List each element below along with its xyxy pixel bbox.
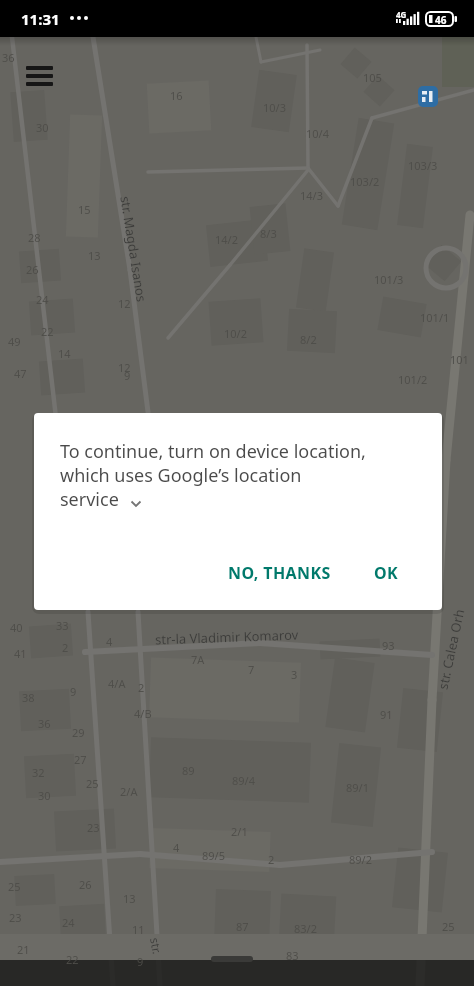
staticText: 25 <box>8 879 21 894</box>
staticText: 13 <box>123 891 136 906</box>
staticText: 41 <box>14 646 27 661</box>
staticText: 87 <box>236 919 249 934</box>
staticText: 7A <box>191 652 205 667</box>
staticText: 8/3 <box>260 226 277 241</box>
staticText: 4G <box>396 9 407 20</box>
staticText: 26 <box>79 877 92 892</box>
staticText: 36 <box>2 50 15 65</box>
staticText: 25 <box>86 776 99 791</box>
staticText: 38 <box>22 690 35 705</box>
staticText: 101/3 <box>374 272 404 287</box>
button[interactable] <box>20 60 59 92</box>
staticText: 16 <box>170 88 183 103</box>
staticText: str. <box>147 936 166 956</box>
staticText: 89/2 <box>349 852 372 867</box>
staticText: 47 <box>14 366 27 381</box>
staticText: 83 <box>286 948 299 963</box>
staticText: 101/2 <box>398 372 428 387</box>
staticText: 12 <box>118 360 131 375</box>
staticText: 30 <box>36 120 49 135</box>
staticText: 24 <box>36 292 49 307</box>
staticText: 103/3 <box>408 158 438 173</box>
staticText: 11 <box>132 922 145 937</box>
staticText: 30 <box>38 788 51 803</box>
staticText: 46 <box>435 13 447 27</box>
staticText: str-la Vladimir Komarov <box>155 625 299 648</box>
staticText: 101/1 <box>420 310 450 325</box>
staticText: 9 <box>137 954 144 969</box>
staticText: 12 <box>118 296 131 311</box>
staticText: 21 <box>17 942 30 957</box>
staticText: 2 <box>268 852 275 867</box>
staticText: 4 <box>106 634 113 649</box>
staticText: 14/2 <box>215 232 238 247</box>
staticText: 4 <box>173 840 180 855</box>
staticText: 22 <box>66 952 79 967</box>
staticText: 33 <box>56 618 69 633</box>
staticText: 15 <box>78 202 91 217</box>
staticText: 29 <box>72 725 85 740</box>
staticText: 89/1 <box>346 780 369 795</box>
staticText: 14 <box>58 346 71 361</box>
staticText: 32 <box>32 765 45 780</box>
staticText: 91 <box>380 707 393 722</box>
staticText: 93 <box>382 638 395 653</box>
staticText: 89/4 <box>232 773 255 788</box>
button[interactable]: OK <box>362 550 411 596</box>
staticText: str. Calea Orh <box>434 607 468 691</box>
staticText: 27 <box>74 752 87 767</box>
staticText: 4/A <box>108 676 126 691</box>
button[interactable] <box>418 86 438 107</box>
staticText: NO, THANKS <box>228 562 331 584</box>
staticText: 11:31 <box>21 9 60 29</box>
staticText: 103/2 <box>350 174 380 189</box>
staticText: 40 <box>10 620 23 635</box>
staticText: 10/2 <box>224 326 247 341</box>
staticText: 89/5 <box>202 848 225 863</box>
staticText: 36 <box>38 716 51 731</box>
staticText: 28 <box>28 230 41 245</box>
staticText: 22 <box>41 324 54 339</box>
staticText: 14/3 <box>300 188 323 203</box>
staticText: To continue, turn on device location, wh… <box>60 439 366 511</box>
staticText: 9 <box>124 368 131 383</box>
staticText: 24 <box>62 915 75 930</box>
staticText: 25 <box>442 919 455 934</box>
staticText: 89 <box>182 763 195 778</box>
staticText: 7 <box>248 662 255 677</box>
staticText: 101 <box>450 352 469 367</box>
staticText: 9 <box>70 684 77 699</box>
staticText: 2 <box>138 680 145 695</box>
staticText: 10/4 <box>306 126 329 141</box>
staticText: 83/2 <box>294 921 317 936</box>
staticText: 23 <box>87 820 100 835</box>
staticText: 49 <box>8 334 21 349</box>
staticText: 3 <box>291 667 298 682</box>
staticText: 2/A <box>120 784 138 799</box>
staticText: 13 <box>88 248 101 263</box>
staticText: 8/2 <box>300 332 317 347</box>
staticText: OK <box>374 562 399 584</box>
staticText: 4/B <box>134 706 152 721</box>
button[interactable]: NO, THANKS <box>216 550 343 596</box>
staticText: str. Magda Isanos <box>116 195 151 303</box>
staticText: 2 <box>62 640 69 655</box>
staticText: 26 <box>26 262 39 277</box>
staticText: 10/3 <box>263 100 286 115</box>
staticText: 105 <box>363 70 382 85</box>
staticText: 23 <box>9 910 22 925</box>
staticText: 2/1 <box>231 824 248 839</box>
